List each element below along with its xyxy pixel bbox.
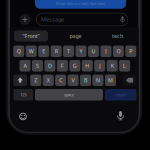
staticText: I: [105, 48, 107, 55]
staticText: E: [42, 48, 45, 55]
staticText: return: [115, 92, 126, 97]
staticText: K: [111, 62, 114, 69]
staticText: Y: [79, 48, 82, 55]
button[interactable]: Q: [13, 45, 24, 57]
staticText: U: [91, 48, 95, 55]
button[interactable]: H: [82, 60, 93, 71]
staticText: T: [67, 48, 70, 55]
button[interactable]: I: [100, 45, 111, 57]
staticText: tech: [112, 32, 123, 40]
button[interactable]: return: [105, 89, 136, 100]
button[interactable]: M: [105, 74, 116, 86]
button[interactable]: E: [38, 45, 49, 57]
button[interactable]: K: [107, 60, 118, 71]
button[interactable]: N: [92, 74, 103, 86]
staticText: “Front”: [22, 32, 39, 40]
button[interactable]: T: [63, 45, 74, 57]
staticText: O: [116, 48, 120, 55]
staticText: B: [84, 77, 87, 84]
button[interactable]: F: [57, 60, 68, 71]
staticText: N: [96, 77, 100, 84]
button[interactable]: “Front”: [14, 30, 48, 41]
staticText: R: [55, 48, 58, 55]
button[interactable]: U: [88, 45, 99, 57]
button[interactable]: X: [43, 74, 54, 86]
button[interactable]: W: [26, 45, 37, 57]
staticText: page: [69, 32, 81, 40]
button[interactable]: A: [19, 60, 30, 71]
button[interactable]: Message: [36, 13, 128, 26]
button[interactable]: O: [113, 45, 124, 57]
staticText: G: [73, 62, 77, 69]
staticText: L: [123, 62, 126, 69]
button[interactable]: tech: [102, 30, 132, 41]
button[interactable]: S: [32, 60, 43, 71]
button[interactable]: 123: [13, 89, 33, 100]
staticText: Q: [17, 48, 21, 55]
button[interactable]: page: [60, 30, 90, 41]
button[interactable]: [19, 14, 30, 25]
button[interactable]: [18, 111, 28, 121]
staticText: Z: [34, 77, 37, 84]
button[interactable]: space: [35, 89, 103, 100]
button[interactable]: L: [119, 60, 130, 71]
button[interactable]: B: [80, 74, 91, 86]
button[interactable]: R: [51, 45, 62, 57]
staticText: Make (this is really fast idea): [56, 1, 105, 6]
staticText: W: [29, 48, 34, 55]
staticText: space: [64, 92, 74, 97]
button[interactable]: J: [94, 60, 105, 71]
staticText: X: [47, 77, 50, 84]
button[interactable]: Z: [30, 74, 41, 86]
staticText: Message: [41, 16, 64, 23]
staticText: P: [129, 48, 132, 55]
staticText: V: [72, 77, 75, 84]
button[interactable]: C: [55, 74, 66, 86]
button[interactable]: [122, 74, 136, 86]
staticText: F: [61, 62, 64, 69]
staticText: 123: [20, 92, 26, 97]
button[interactable]: G: [69, 60, 80, 71]
staticText: A: [23, 62, 26, 69]
button[interactable]: [13, 74, 27, 86]
button[interactable]: Y: [75, 45, 86, 57]
staticText: J: [99, 62, 100, 69]
staticText: D: [48, 62, 52, 69]
staticText: H: [85, 62, 89, 69]
button[interactable]: V: [68, 74, 79, 86]
staticText: S: [36, 62, 39, 69]
button[interactable]: P: [125, 45, 136, 57]
staticText: C: [59, 77, 62, 84]
button[interactable]: [115, 110, 125, 121]
staticText: M: [108, 77, 113, 84]
button[interactable]: D: [44, 60, 55, 71]
